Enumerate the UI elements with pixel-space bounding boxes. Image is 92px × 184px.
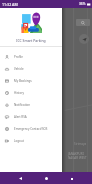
button[interactable]: History	[0, 87, 62, 99]
button[interactable]: Vehicle	[0, 63, 62, 75]
staticText: Alert RSA	[14, 115, 27, 119]
staticText: 11:32 AM	[2, 2, 18, 7]
button[interactable]: Back	[15, 173, 26, 184]
staticText: Notification	[14, 103, 31, 107]
button[interactable]: Navigate	[79, 34, 89, 44]
staticText: Vehicle	[14, 67, 24, 71]
staticText: Emergency Contact/SOS	[14, 127, 48, 131]
staticText: My Bookings	[14, 79, 32, 83]
button[interactable]: Alert RSA	[0, 111, 62, 123]
button[interactable]: Notification	[0, 99, 62, 111]
button[interactable]: My Bookings	[0, 75, 62, 87]
button[interactable]: Recents	[66, 173, 77, 184]
button[interactable]: Home	[41, 173, 52, 184]
button[interactable]: Profile	[0, 51, 62, 63]
staticText: Logout	[14, 139, 24, 143]
staticText: JANAKPURI NAGAR WEST	[68, 152, 87, 160]
staticText: ICC Smart Parking	[16, 38, 46, 43]
staticText: Profile	[14, 55, 23, 59]
button[interactable]: Search	[76, 19, 90, 26]
button[interactable]: Logout	[0, 135, 62, 147]
staticText: 36%	[79, 2, 86, 6]
button[interactable]: Emergency Contact/SOS	[0, 123, 62, 135]
staticText: Sirimaya	[74, 142, 87, 146]
staticText: History	[14, 91, 24, 95]
